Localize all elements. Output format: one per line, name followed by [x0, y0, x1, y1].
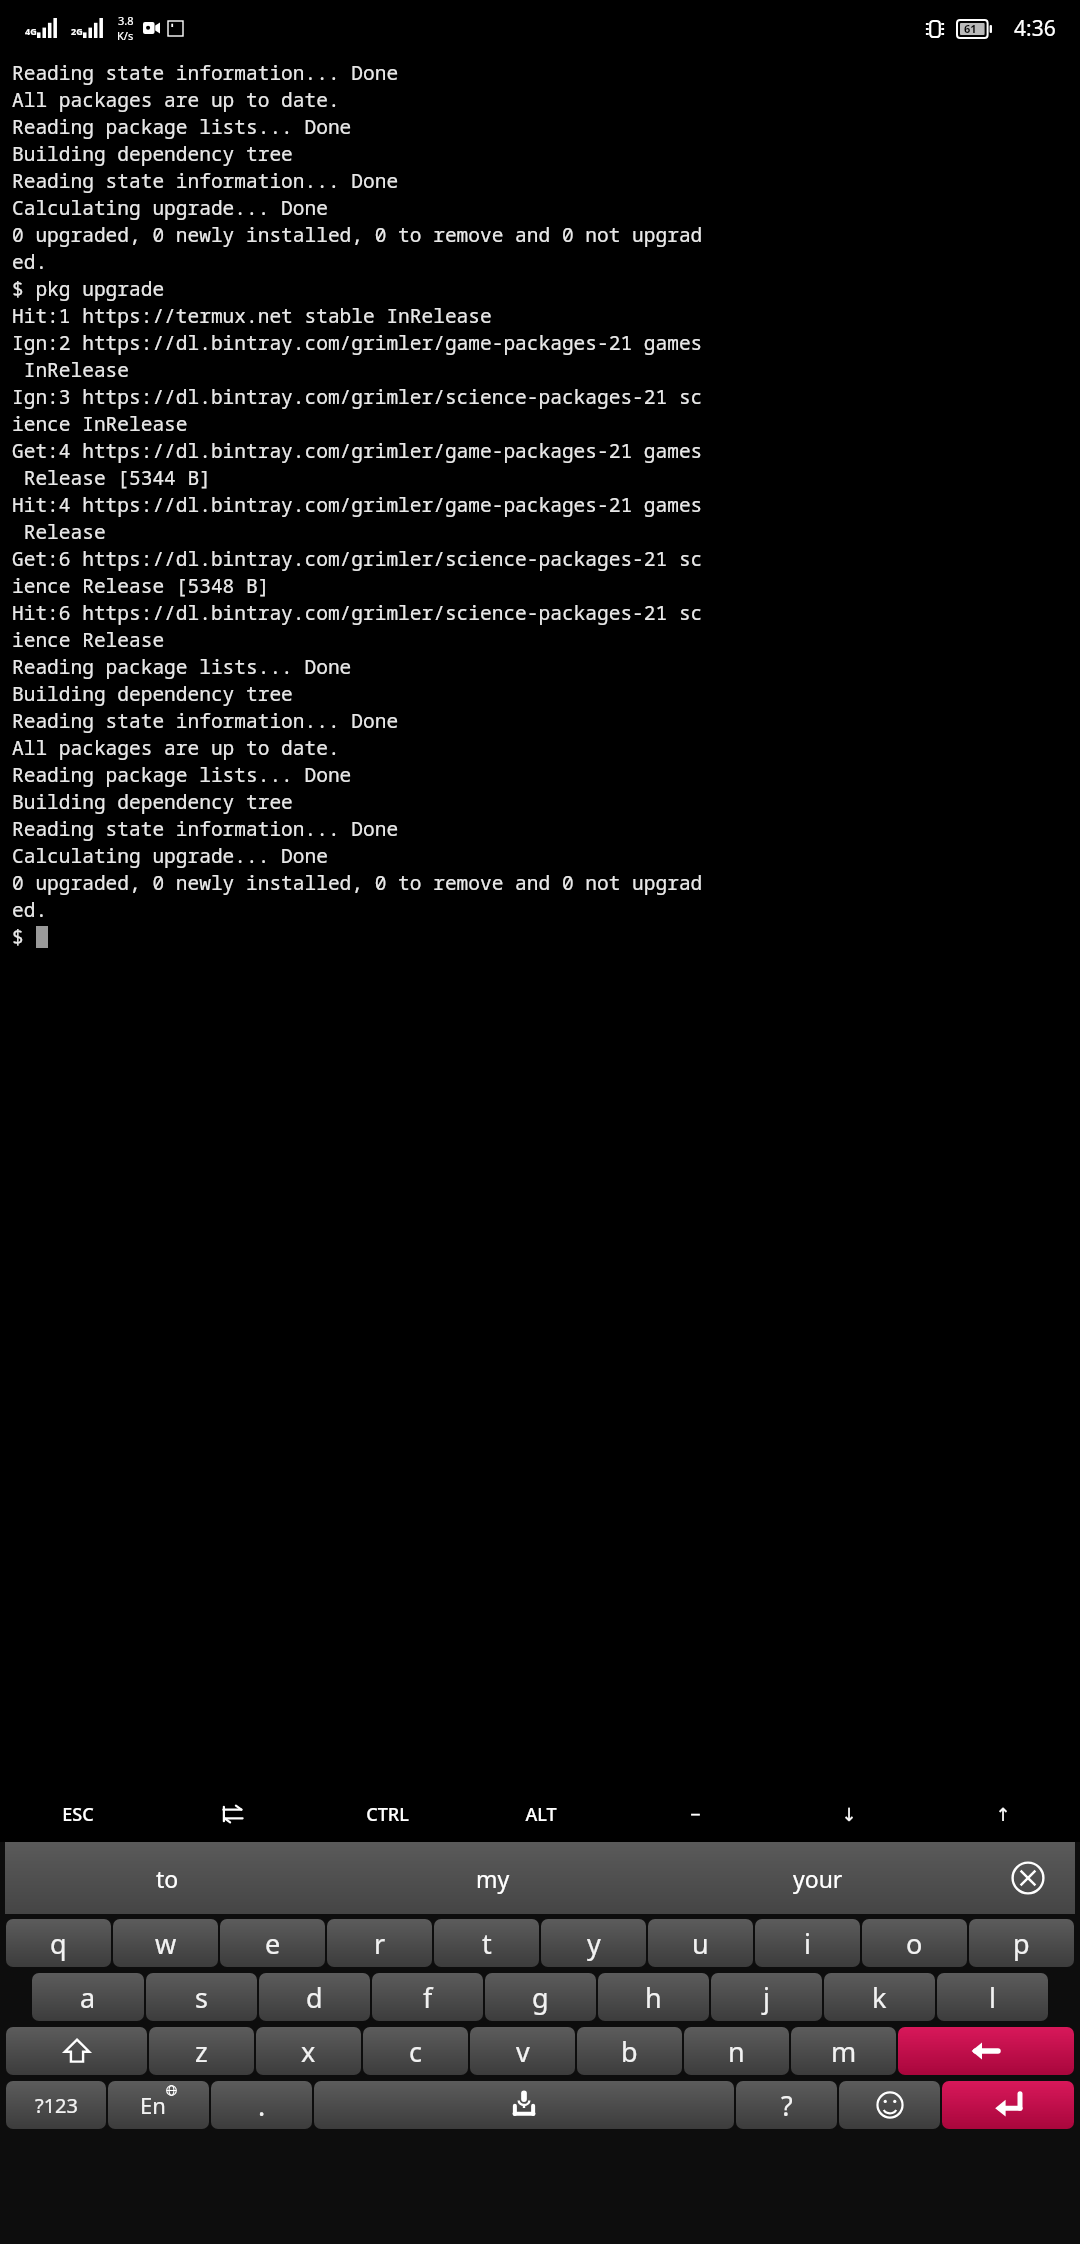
staticText: e: [265, 1925, 281, 1962]
staticText: Building dependency tree: [12, 140, 293, 167]
button[interactable]: Reading state information... Done: [0, 56, 1080, 1786]
staticText: r: [374, 1925, 386, 1962]
staticText: h: [645, 1979, 662, 2016]
staticText: ESC: [62, 1802, 94, 1827]
button[interactable]: Tab: [155, 1786, 310, 1842]
staticText: Reading package lists... Done: [12, 113, 352, 140]
button[interactable]: n: [684, 2027, 789, 2075]
button[interactable]: a: [32, 1973, 144, 2021]
staticText: l: [989, 1979, 996, 2016]
staticText: ience Release [5348 B]: [12, 572, 270, 599]
button[interactable]: Close suggestions: [980, 1842, 1075, 1914]
staticText: ↓: [841, 1804, 857, 1825]
staticText: Get:6 https://dl.bintray.com/grimler/sci…: [12, 545, 703, 572]
button[interactable]: s: [146, 1973, 257, 2021]
staticText: ALT: [525, 1802, 557, 1827]
staticText: Reading package lists... Done: [12, 653, 352, 680]
staticText: K/s: [117, 28, 134, 43]
staticText: 0 upgraded, 0 newly installed, 0 to remo…: [12, 869, 703, 896]
staticText: g: [532, 1979, 549, 2016]
button[interactable]: ↑: [926, 1786, 1080, 1842]
button[interactable]: d: [259, 1973, 370, 2021]
button[interactable]: ALT: [464, 1786, 618, 1842]
button[interactable]: k: [824, 1973, 935, 2021]
staticText: c: [409, 2033, 422, 2070]
button[interactable]: Shift: [6, 2027, 147, 2075]
staticText: Building dependency tree: [12, 680, 293, 707]
button[interactable]: h: [598, 1973, 709, 2021]
staticText: a: [80, 1979, 96, 2016]
staticText: 2G: [71, 25, 83, 37]
staticText: 61: [964, 21, 977, 36]
button[interactable]: Backspace: [898, 2027, 1074, 2075]
button[interactable]: x: [256, 2027, 361, 2075]
staticText: Release [5344 B]: [12, 464, 211, 491]
button[interactable]: p: [969, 1919, 1074, 1967]
button[interactable]: my: [330, 1842, 655, 1914]
button[interactable]: j: [711, 1973, 822, 2021]
staticText: 3.8: [118, 13, 134, 28]
staticText: q: [50, 1925, 67, 1962]
button[interactable]: Enter: [942, 2081, 1074, 2129]
staticText: w: [155, 1925, 177, 1962]
staticText: Reading state information... Done: [12, 815, 399, 842]
button[interactable]: i: [755, 1919, 860, 1967]
staticText: −: [690, 1802, 701, 1827]
button[interactable]: your: [655, 1842, 980, 1914]
staticText: CTRL: [366, 1802, 409, 1827]
staticText: Ign:2 https://dl.bintray.com/grimler/gam…: [12, 329, 703, 356]
staticText: 4G: [25, 25, 37, 37]
staticText: Release: [12, 518, 106, 545]
staticText: your: [793, 1863, 843, 1894]
button[interactable]: ESC: [0, 1786, 155, 1842]
button[interactable]: c: [363, 2027, 468, 2075]
staticText: ience Release: [12, 626, 165, 653]
staticText: y: [587, 1925, 601, 1962]
button[interactable]: u: [648, 1919, 753, 1967]
button[interactable]: w: [113, 1919, 218, 1967]
button[interactable]: CTRL: [310, 1786, 464, 1842]
staticText: 0 upgraded, 0 newly installed, 0 to remo…: [12, 221, 703, 248]
button[interactable]: ↓: [772, 1786, 926, 1842]
staticText: $ pkg upgrade: [12, 275, 165, 302]
button[interactable]: f: [372, 1973, 483, 2021]
button[interactable]: Change language: [108, 2081, 209, 2129]
button[interactable]: q: [6, 1919, 111, 1967]
staticText: ed.: [12, 896, 48, 923]
button[interactable]: Space / voice input: [314, 2081, 734, 2129]
button[interactable]: Emoji: [839, 2081, 940, 2129]
staticText: Reading package lists... Done: [12, 761, 352, 788]
staticText: Reading state information... Done: [12, 167, 399, 194]
button[interactable]: y: [541, 1919, 646, 1967]
button[interactable]: ?: [736, 2081, 837, 2129]
button[interactable]: ?123: [6, 2081, 106, 2129]
staticText: n: [728, 2033, 745, 2070]
staticText: Building dependency tree: [12, 788, 293, 815]
staticText: Hit:1 https://termux.net stable InReleas…: [12, 302, 492, 329]
staticText: v: [516, 2033, 530, 2070]
staticText: f: [423, 1979, 433, 2016]
staticText: $: [12, 923, 36, 950]
button[interactable]: e: [220, 1919, 325, 1967]
button[interactable]: .: [211, 2081, 312, 2129]
staticText: Hit:6 https://dl.bintray.com/grimler/sci…: [12, 599, 703, 626]
button[interactable]: −: [618, 1786, 772, 1842]
staticText: ed.: [12, 248, 48, 275]
button[interactable]: to: [5, 1842, 330, 1914]
staticText: j: [763, 1979, 770, 2016]
button[interactable]: l: [937, 1973, 1048, 2021]
staticText: En: [140, 2090, 166, 2120]
staticText: Calculating upgrade... Done: [12, 194, 328, 221]
button[interactable]: v: [470, 2027, 575, 2075]
staticText: ?: [781, 2087, 793, 2124]
button[interactable]: g: [485, 1973, 596, 2021]
button[interactable]: z: [149, 2027, 254, 2075]
button[interactable]: b: [577, 2027, 682, 2075]
button[interactable]: t: [434, 1919, 539, 1967]
button[interactable]: m: [791, 2027, 896, 2075]
staticText: p: [1013, 1925, 1030, 1962]
button[interactable]: r: [327, 1919, 432, 1967]
staticText: my: [476, 1863, 510, 1894]
button[interactable]: o: [862, 1919, 967, 1967]
staticText: ience InRelease: [12, 410, 188, 437]
